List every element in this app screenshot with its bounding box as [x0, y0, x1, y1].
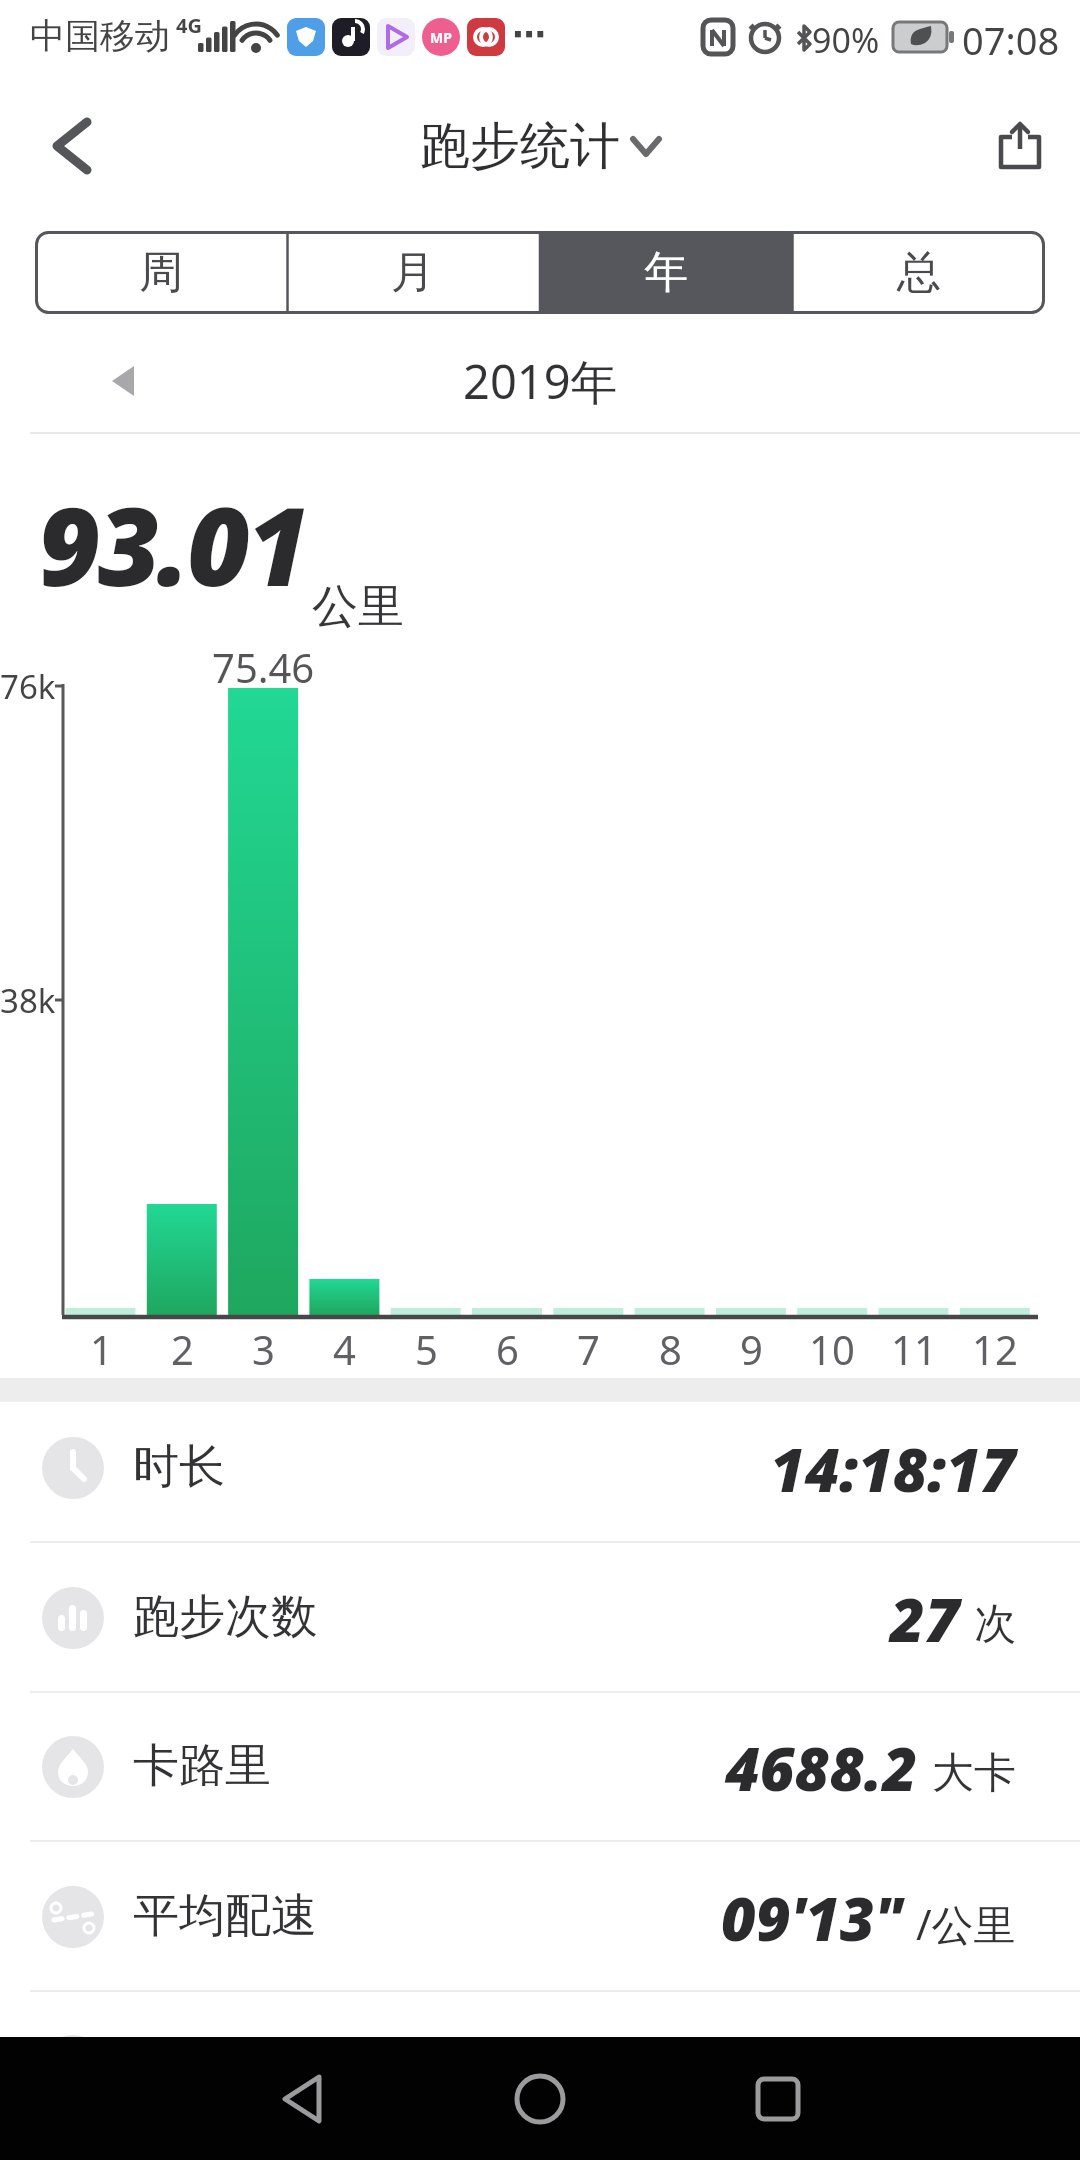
button[interactable]: 跑步统计 [420, 115, 660, 178]
staticText: 12 [972, 1322, 1018, 1376]
staticText: 总里程 [133, 2036, 271, 2094]
staticText: 4G [176, 12, 202, 39]
staticText: 月 [391, 245, 435, 300]
staticText: 1 [90, 1322, 113, 1376]
staticText: 中国移动 [30, 14, 170, 58]
staticText: 9 [740, 1322, 763, 1376]
staticText: 公里 [312, 578, 404, 636]
staticText: 时长 [133, 1438, 225, 1496]
staticText: 11 [891, 1322, 937, 1376]
button[interactable]: 月 [287, 231, 539, 314]
staticText: MP [430, 28, 452, 47]
staticText: 4688.2 [725, 1727, 918, 1809]
staticText: 2 [171, 1322, 194, 1376]
staticText: 27 [890, 1578, 960, 1660]
staticText: 93.01 [760, 2026, 918, 2108]
staticText: 卡路里 [133, 1737, 271, 1795]
button[interactable]: 总里程 [0, 1992, 1080, 2141]
button[interactable]: 年 [539, 231, 792, 314]
staticText: /公里 [916, 1895, 1016, 1952]
button[interactable] [252, 2049, 352, 2149]
staticText: 14:18:17 [770, 1428, 1016, 1510]
staticText: 总 [897, 245, 941, 300]
staticText: 跑步次数 [133, 1588, 317, 1646]
button[interactable]: 卡路里 [0, 1693, 1080, 1842]
staticText: 7 [577, 1322, 600, 1376]
staticText: 93.01 [38, 471, 307, 618]
staticText: 09'13" [721, 1877, 902, 1959]
staticText: 6 [496, 1322, 519, 1376]
staticText: ⋯ [512, 14, 546, 54]
button[interactable] [728, 2049, 828, 2149]
button[interactable]: 总 [792, 231, 1045, 314]
staticText: 75.46 [212, 640, 315, 694]
staticText: 10 [809, 1322, 855, 1376]
staticText: 07:08 [962, 14, 1060, 66]
staticText: 3 [252, 1322, 275, 1376]
staticText: 38k [0, 978, 56, 1023]
staticText: 5 [415, 1322, 438, 1376]
button[interactable] [490, 2049, 590, 2149]
staticText: 76k [0, 664, 56, 709]
staticText: 大卡 [932, 1747, 1016, 1800]
button[interactable]: 平均配速 [0, 1843, 1080, 1992]
button[interactable] [88, 346, 158, 416]
button[interactable]: 周 [35, 231, 287, 314]
staticText: 周 [139, 245, 183, 300]
staticText: 平均配速 [133, 1887, 317, 1945]
button[interactable]: 时长 [0, 1394, 1080, 1543]
button[interactable] [980, 106, 1060, 186]
staticText: 90% [812, 17, 880, 63]
staticText: 年 [644, 245, 688, 300]
staticText: 次 [974, 1598, 1016, 1651]
staticText: 2019年 [463, 349, 618, 413]
button[interactable]: 跑步次数 [0, 1544, 1080, 1693]
staticText: 8 [659, 1322, 682, 1376]
staticText: 跑步统计 [420, 115, 620, 178]
button[interactable] [30, 106, 110, 186]
staticText: 4 [333, 1322, 356, 1376]
